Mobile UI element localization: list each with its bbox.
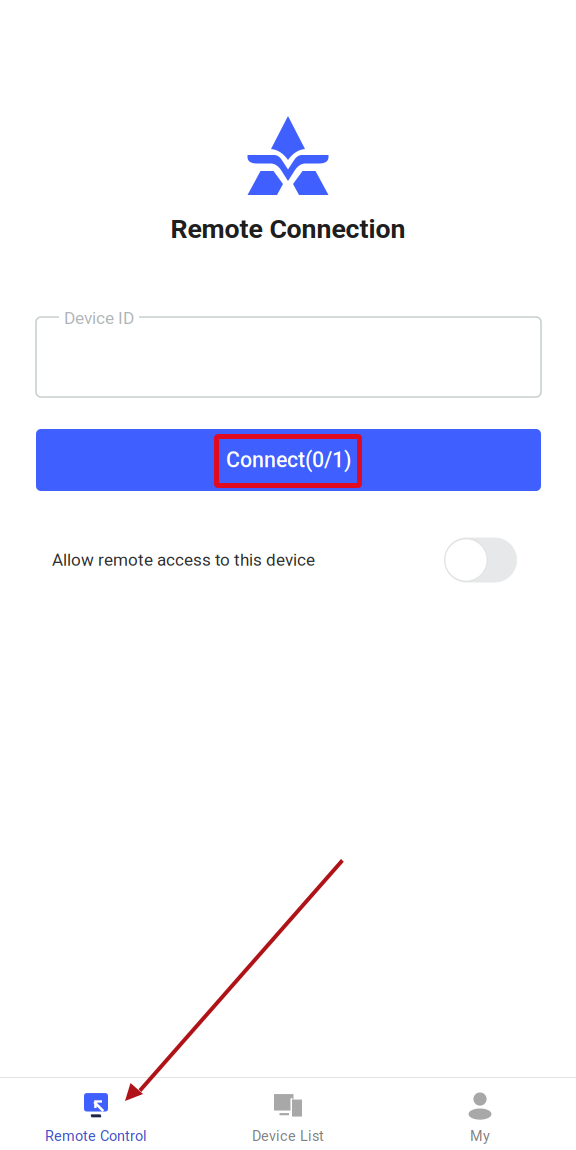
staticText: Connect(0/1) bbox=[226, 447, 351, 472]
button[interactable]: Connect(0/1) bbox=[36, 429, 541, 491]
staticText: Device ID bbox=[64, 308, 134, 328]
button[interactable]: Allow remote access to this device bbox=[444, 537, 517, 582]
button[interactable]: Remote Control bbox=[0, 1078, 192, 1150]
button[interactable]: Device List bbox=[192, 1078, 384, 1150]
staticText: Allow remote access to this device bbox=[52, 550, 315, 570]
staticText: My bbox=[470, 1128, 490, 1144]
staticText: Remote Connection bbox=[170, 213, 405, 245]
staticText: Remote Control bbox=[45, 1128, 147, 1144]
button[interactable]: My bbox=[384, 1078, 576, 1150]
staticText: Device List bbox=[252, 1128, 324, 1144]
